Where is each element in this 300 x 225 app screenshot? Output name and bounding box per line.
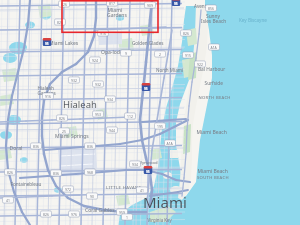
button[interactable]: Map of Miami bbox=[0, 0, 300, 225]
